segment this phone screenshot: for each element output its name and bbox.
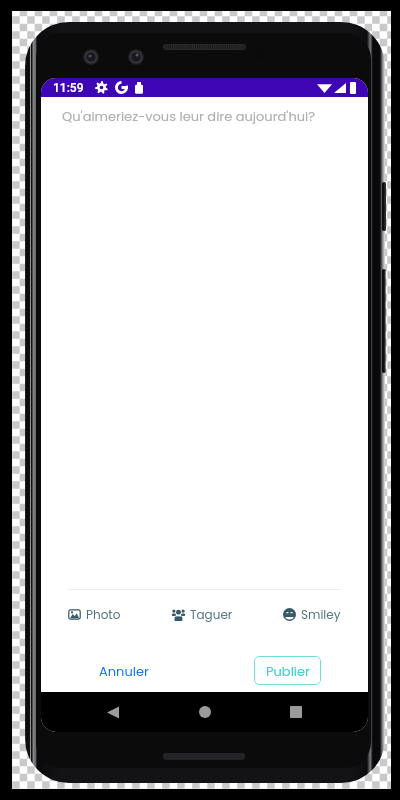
staticText: Annuler bbox=[99, 662, 149, 680]
button[interactable]: Recent apps bbox=[277, 693, 315, 731]
button[interactable]: Publier bbox=[254, 656, 321, 685]
button[interactable]: Smiley bbox=[283, 603, 341, 626]
button[interactable]: Home bbox=[186, 693, 224, 731]
button[interactable]: Back bbox=[94, 693, 132, 731]
staticText: 11:59 bbox=[53, 81, 84, 95]
button[interactable]: Photo bbox=[68, 603, 121, 626]
button[interactable]: Taguer bbox=[172, 603, 233, 626]
staticText: Photo bbox=[86, 606, 121, 623]
staticText: Taguer bbox=[190, 606, 233, 623]
button[interactable]: Annuler bbox=[93, 658, 155, 684]
staticText: Qu'aimeriez-vous leur dire aujourd'hui? bbox=[62, 107, 316, 125]
staticText: Smiley bbox=[301, 606, 341, 623]
staticText: Publier bbox=[266, 662, 310, 680]
